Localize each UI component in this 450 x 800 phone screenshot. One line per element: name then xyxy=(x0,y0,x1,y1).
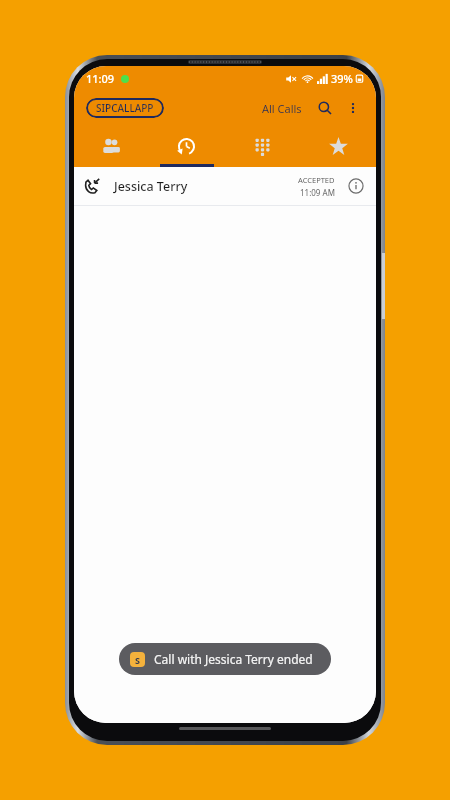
button[interactable]: More options xyxy=(342,97,364,119)
button[interactable]: Contacts xyxy=(74,125,149,167)
staticText: 11:09 AM xyxy=(300,187,335,198)
staticText: 11:09 xyxy=(86,71,115,86)
button[interactable]: S xyxy=(119,643,331,675)
staticText: 39% xyxy=(331,71,353,86)
button[interactable]: Recents xyxy=(149,125,224,167)
staticText: ACCEPTED xyxy=(298,175,335,185)
staticText: S xyxy=(135,654,140,666)
staticText: All Calls xyxy=(262,101,302,116)
button[interactable]: Search xyxy=(314,97,336,119)
button[interactable]: Favorites xyxy=(300,125,376,167)
button[interactable]: Jessica Terry xyxy=(74,167,376,205)
staticText: Jessica Terry xyxy=(114,178,188,195)
staticText: SIPCALLAPP xyxy=(96,101,154,115)
button[interactable]: Dialpad xyxy=(224,125,300,167)
button[interactable]: SIPCALLAPP xyxy=(86,98,164,118)
button[interactable]: Call details xyxy=(344,174,368,198)
button[interactable]: All Calls xyxy=(259,97,305,120)
staticText: Call with Jessica Terry ended xyxy=(154,651,313,667)
